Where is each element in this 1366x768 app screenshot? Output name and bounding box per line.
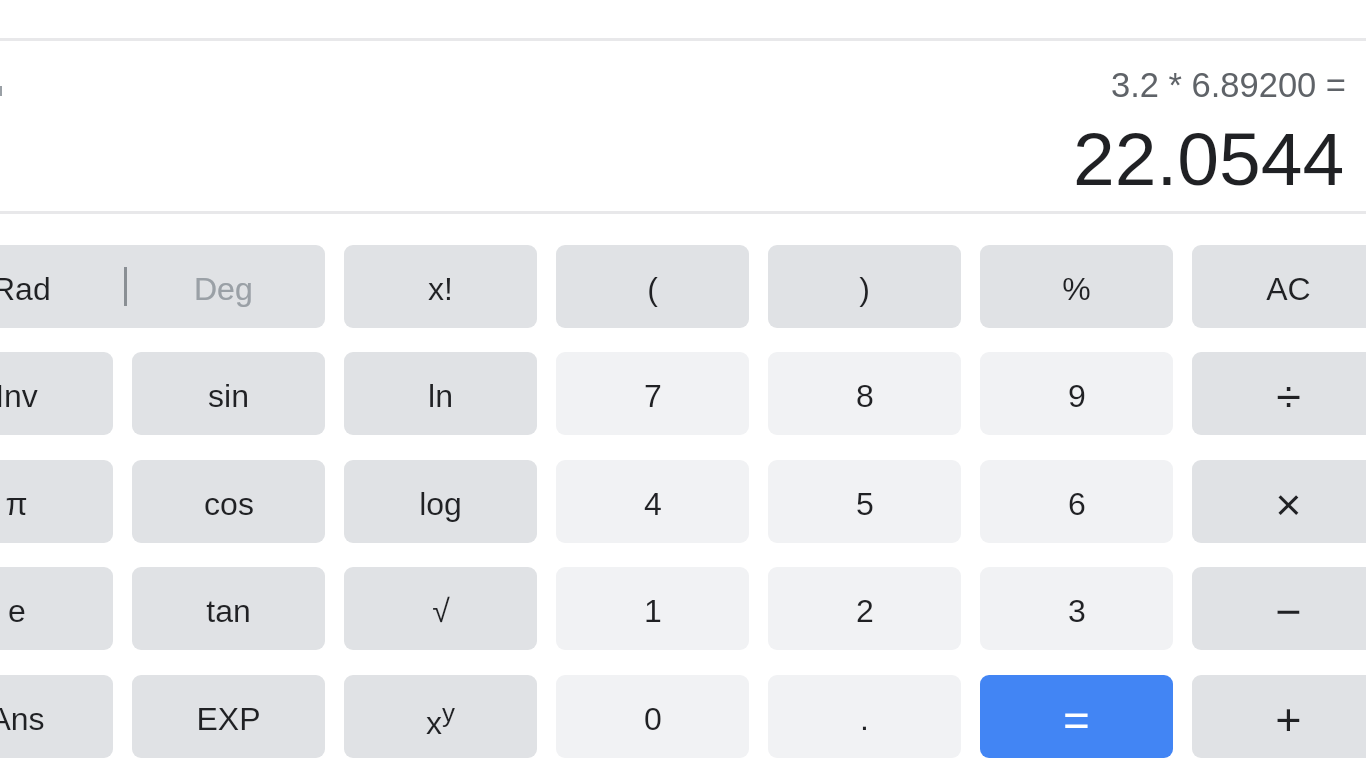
staticText: ln (428, 378, 453, 414)
button[interactable]: Inv (0, 352, 113, 435)
staticText: ) (859, 271, 870, 307)
button[interactable]: Rad (0, 245, 325, 328)
button[interactable]: 0 (556, 675, 749, 758)
button[interactable]: = (980, 675, 1173, 758)
staticText: 4 (644, 486, 662, 522)
staticText: 0 (644, 701, 662, 737)
button[interactable]: log (344, 460, 537, 543)
button[interactable]: AC (1192, 245, 1366, 328)
button[interactable]: Ans (0, 675, 113, 758)
button[interactable]: x! (344, 245, 537, 328)
button[interactable]: Divide (1192, 352, 1366, 435)
staticText: Inv (0, 378, 38, 414)
staticText: xy (426, 698, 455, 740)
button[interactable]: cos (132, 460, 325, 543)
staticText: 22.0544 (1073, 117, 1345, 201)
staticText: Ans (0, 701, 45, 737)
staticText: Rad (0, 271, 51, 307)
button[interactable]: tan (132, 567, 325, 650)
staticText: √ (432, 593, 450, 629)
staticText: e (8, 593, 26, 629)
staticText: 7 (644, 378, 662, 414)
button[interactable]: % (980, 245, 1173, 328)
staticText: π (5, 486, 28, 522)
button[interactable]: 9 (980, 352, 1173, 435)
button[interactable]: 4 (556, 460, 749, 543)
staticText: × (1275, 479, 1302, 529)
button[interactable]: ln (344, 352, 537, 435)
button[interactable]: ( (556, 245, 749, 328)
staticText: − (1275, 586, 1302, 636)
button[interactable]: 1 (556, 567, 749, 650)
staticText: = (1063, 694, 1090, 744)
staticText: % (1062, 271, 1091, 307)
button[interactable]: 5 (768, 460, 961, 543)
button[interactable]: 6 (980, 460, 1173, 543)
staticText: 1 (644, 593, 662, 629)
button[interactable]: 2 (768, 567, 961, 650)
button[interactable]: 3 (980, 567, 1173, 650)
button[interactable]: π (0, 460, 113, 543)
staticText: 3 (1068, 593, 1086, 629)
staticText: EXP (196, 701, 261, 737)
staticText: tan (206, 593, 251, 629)
button[interactable]: √ (344, 567, 537, 650)
staticText: 8 (856, 378, 874, 414)
staticText: 6 (1068, 486, 1086, 522)
staticText: 3.2 * 6.89200 = (1111, 66, 1346, 105)
button[interactable]: e (0, 567, 113, 650)
button[interactable]: sin (132, 352, 325, 435)
staticText: log (419, 486, 462, 522)
staticText: Deg (194, 271, 253, 307)
staticText: x! (428, 271, 453, 307)
staticText: AC (1266, 271, 1311, 307)
staticText: 9 (1068, 378, 1086, 414)
button[interactable]: . (768, 675, 961, 758)
staticText: 5 (856, 486, 874, 522)
staticText: 2 (856, 593, 874, 629)
staticText: + (1275, 694, 1302, 744)
staticText: sin (208, 378, 249, 414)
staticText: . (860, 701, 869, 737)
button[interactable]: x to the power of y (344, 675, 537, 758)
button[interactable]: 8 (768, 352, 961, 435)
staticText: ( (647, 271, 658, 307)
staticText: ÷ (1276, 371, 1301, 421)
button[interactable]: 7 (556, 352, 749, 435)
button[interactable]: ) (768, 245, 961, 328)
button[interactable]: Multiply (1192, 460, 1366, 543)
button[interactable]: Minus (1192, 567, 1366, 650)
staticText: cos (204, 486, 254, 522)
button[interactable]: Plus (1192, 675, 1366, 758)
button[interactable]: EXP (132, 675, 325, 758)
